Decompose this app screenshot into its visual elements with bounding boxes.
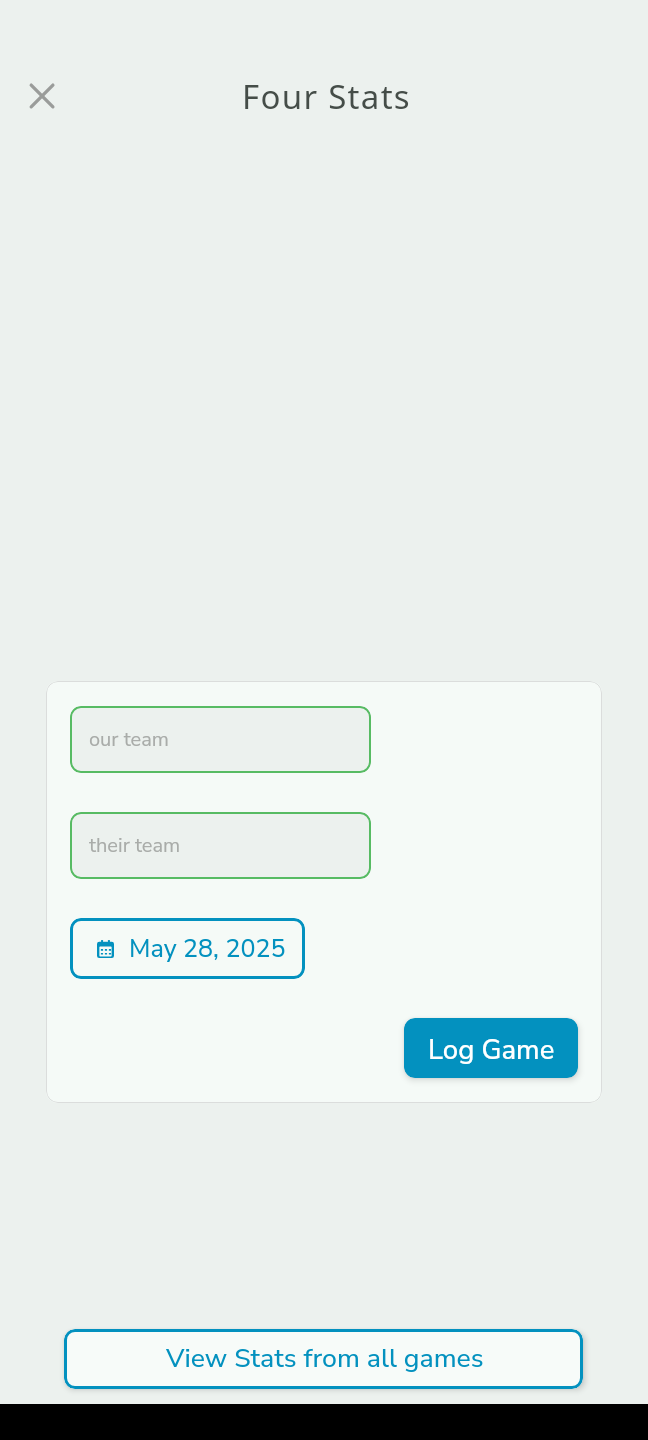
- button[interactable]: May 28, 2025: [70, 918, 305, 979]
- staticText: May 28, 2025: [129, 932, 286, 966]
- button[interactable]: Log Game: [404, 1018, 578, 1078]
- button[interactable]: View Stats from all games: [64, 1329, 583, 1389]
- staticText: Four Stats: [242, 74, 411, 119]
- button[interactable]: our team: [70, 706, 371, 773]
- staticText: their team: [89, 832, 181, 859]
- button[interactable]: their team: [70, 812, 371, 879]
- button[interactable]: Close: [18, 72, 66, 120]
- staticText: Log Game: [428, 1031, 555, 1068]
- staticText: View Stats from all games: [166, 1340, 484, 1376]
- staticText: our team: [89, 726, 169, 753]
